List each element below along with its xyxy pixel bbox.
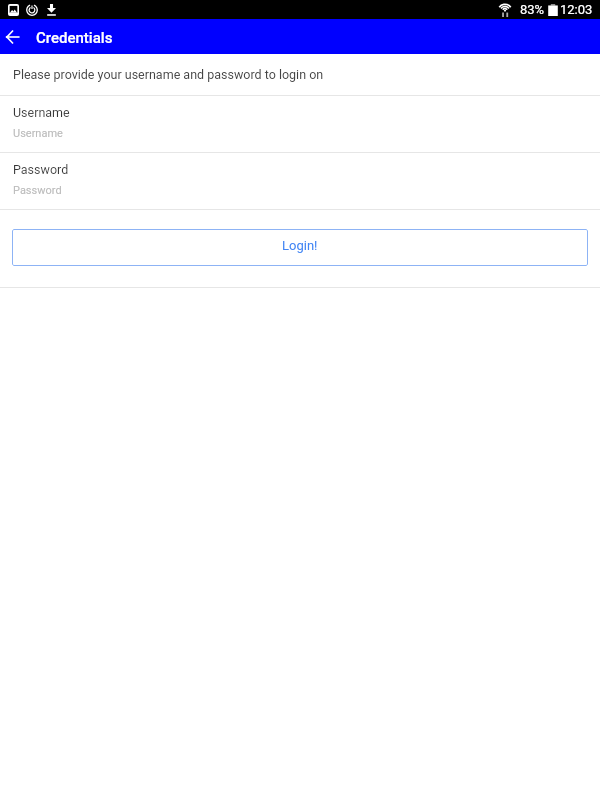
button[interactable]: Password [0, 153, 600, 209]
staticText: Please provide your username and passwor… [13, 67, 324, 82]
staticText: Login! [282, 238, 318, 253]
staticText: 83% [520, 2, 545, 17]
staticText: Password [13, 162, 69, 177]
staticText: Username [13, 105, 70, 120]
button[interactable]: Navigate up [0, 19, 24, 54]
staticText: Password [13, 184, 62, 197]
button[interactable]: Login! [12, 229, 588, 266]
staticText: Username [13, 127, 63, 140]
staticText: 12:03 [560, 2, 593, 17]
button[interactable]: Username [0, 96, 600, 152]
staticText: Credentials [36, 29, 113, 47]
